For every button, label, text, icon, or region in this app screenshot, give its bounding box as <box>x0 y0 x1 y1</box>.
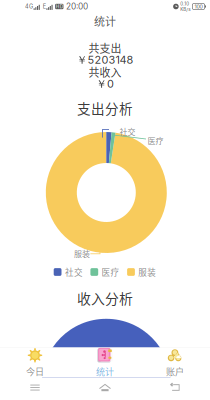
staticText: 统计 <box>96 365 114 378</box>
staticText: 0.10 <box>180 1 189 6</box>
staticText: KB/s <box>180 6 190 12</box>
staticText: 100 <box>194 3 202 10</box>
button[interactable]: Back <box>140 379 210 397</box>
staticText: 医疗 <box>102 266 120 278</box>
staticText: 医疗 <box>147 135 163 146</box>
staticText: 收入分析 <box>77 288 133 308</box>
staticText: 4G <box>25 3 33 10</box>
button[interactable]: Home <box>70 379 140 397</box>
staticText: 统计 <box>94 13 116 29</box>
button[interactable]: 今日 <box>0 348 70 378</box>
staticText: 账户 <box>166 365 184 378</box>
staticText: 服装 <box>138 266 156 278</box>
staticText: 今日 <box>26 365 44 378</box>
staticText: 支出分析 <box>77 98 133 118</box>
button[interactable]: Recent apps <box>0 379 70 397</box>
staticText: E <box>43 3 46 10</box>
staticText: 共收入 <box>88 64 121 80</box>
button[interactable]: 统计 <box>70 348 140 378</box>
staticText: ￥5203148 <box>76 53 133 67</box>
button[interactable]: 账户 <box>140 348 210 378</box>
staticText: 20:00 <box>66 1 88 11</box>
staticText: ￥0 <box>96 77 114 91</box>
staticText: 共支出 <box>88 40 121 56</box>
staticText: 社交 <box>119 126 135 137</box>
staticText: 服装 <box>74 248 90 259</box>
staticText: HD <box>56 4 63 9</box>
staticText: 社交 <box>65 266 83 278</box>
